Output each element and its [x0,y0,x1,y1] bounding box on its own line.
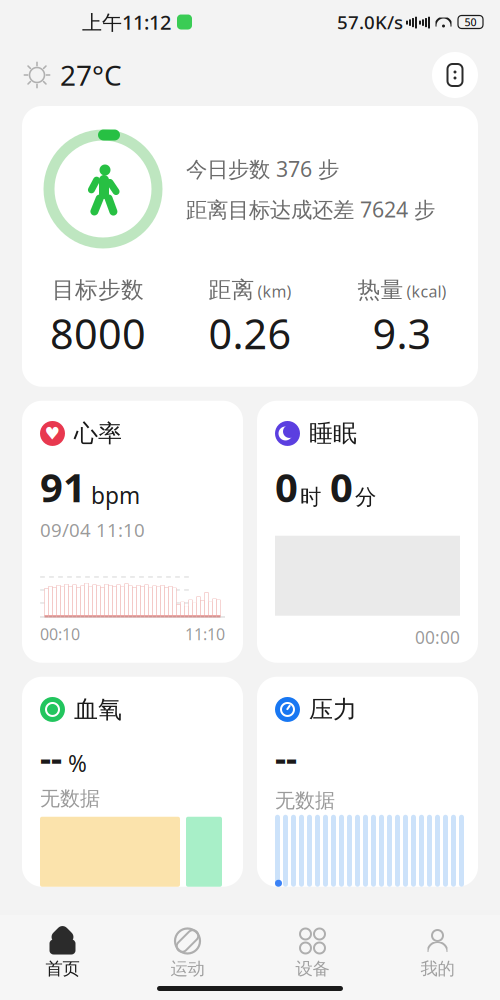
staticText: -- [40,734,62,780]
staticText: 50 [464,15,476,29]
staticText: 0.26 [208,306,291,361]
staticText: (km) [257,281,291,302]
staticText: 心率 [74,419,122,448]
staticText: 血氧 [74,695,122,724]
staticText: 时 [300,484,321,510]
staticText: 距离 [208,276,254,304]
button[interactable]: 压力 [257,677,478,887]
staticText: 00:00 [415,626,460,649]
staticText: 运动 [170,958,204,979]
button[interactable]: 我的 [375,921,500,985]
staticText: 无数据 [40,786,100,811]
button[interactable]: 首页 [0,921,125,985]
button[interactable]: 我的设备 [432,52,478,98]
staticText: 压力 [309,695,357,724]
staticText: 09/04 11:10 [40,517,145,542]
button[interactable]: 运动 [125,921,250,985]
staticText: bpm [91,480,140,510]
staticText: 91 [40,460,86,513]
button[interactable]: 设备 [250,921,375,985]
button[interactable]: 今日步数 376 步 [22,106,478,387]
staticText: 8000 [50,306,146,361]
staticText: 分 [355,484,376,510]
button[interactable]: ♥ [22,401,243,663]
staticText: 27°C [60,56,122,94]
staticText: 我的 [420,958,454,979]
staticText: 首页 [45,958,79,979]
staticText: % [68,748,87,778]
staticText: 57.0K/s [337,10,403,34]
staticText: 距离目标达成还差 7624 步 [186,195,435,223]
button[interactable]: 血氧 [22,677,243,887]
staticText: 9.3 [372,306,431,361]
staticText: 无数据 [275,788,335,813]
staticText: 今日步数 376 步 [186,155,339,183]
staticText: -- [275,734,297,780]
staticText: ♥ [44,424,60,443]
staticText: 0 [275,460,298,513]
staticText: 上午11:12 [82,9,171,35]
staticText: 11:10 [185,623,225,645]
staticText: 热量 [357,276,403,304]
staticText: 目标步数 [52,276,144,304]
staticText: (kcal) [406,281,446,302]
staticText: 00:10 [40,623,80,645]
staticText: 0 [330,460,353,513]
staticText: 设备 [295,958,329,979]
button[interactable]: 睡眠 [257,401,478,663]
staticText: 睡眠 [309,419,357,448]
